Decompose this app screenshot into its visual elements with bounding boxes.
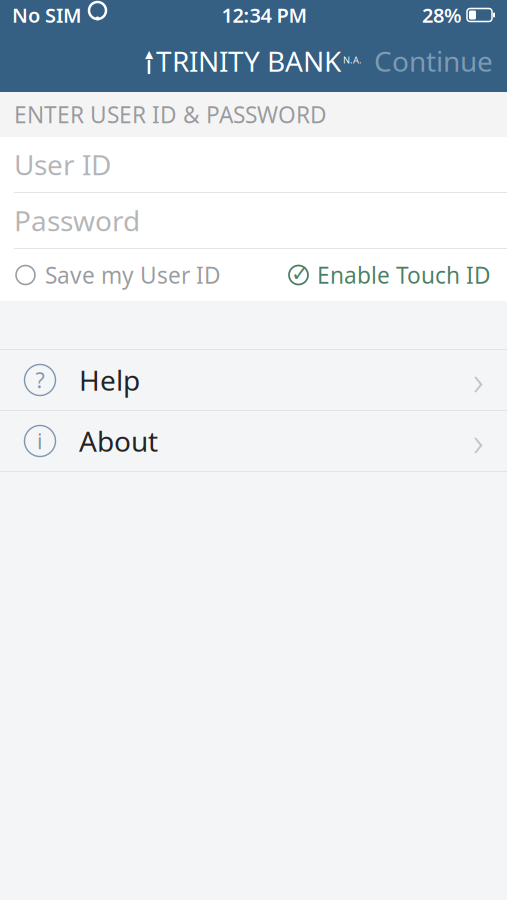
button[interactable]: Continue	[360, 34, 507, 88]
staticText: ?	[35, 366, 44, 394]
staticText: About	[79, 422, 158, 460]
staticText: ▲	[145, 48, 153, 60]
staticText: ›	[473, 414, 484, 467]
button[interactable]: ✓	[288, 250, 491, 300]
staticText: i	[37, 427, 43, 455]
staticText: ›	[473, 353, 484, 406]
button[interactable]: Save my User ID	[16, 250, 221, 300]
staticText: ✓	[291, 261, 309, 286]
staticText: Continue	[374, 42, 493, 80]
staticText: User ID	[14, 146, 111, 183]
staticText: Password	[14, 202, 140, 239]
staticText: N.A.	[343, 54, 362, 66]
staticText: 12:34 PM	[221, 2, 307, 28]
staticText: 28%	[422, 2, 462, 28]
staticText: TRINITY BANK	[156, 42, 341, 80]
staticText: No SIM	[12, 2, 82, 28]
button[interactable]: ?	[0, 350, 507, 411]
staticText: Enable Touch ID	[317, 260, 491, 290]
button[interactable]: i	[0, 411, 507, 472]
staticText: ENTER USER ID & PASSWORD	[14, 99, 327, 129]
staticText: Help	[79, 361, 140, 399]
staticText: Save my User ID	[45, 260, 221, 290]
